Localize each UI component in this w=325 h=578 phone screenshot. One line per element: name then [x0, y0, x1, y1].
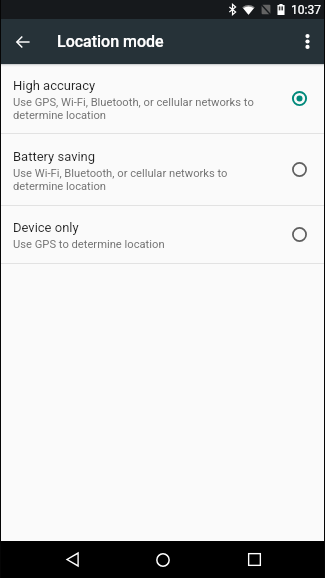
button[interactable]: High accuracy [1, 64, 324, 133]
button[interactable]: Navigate up [7, 26, 38, 57]
button[interactable]: More options [292, 26, 323, 57]
staticText: Battery saving [13, 149, 96, 164]
staticText: Use GPS, Wi-Fi, Bluetooth, or cellular n… [13, 96, 256, 122]
staticText: Device only [13, 220, 79, 235]
staticText: 10:37 [291, 3, 321, 17]
button[interactable]: Battery saving [1, 134, 324, 205]
staticText: Use Wi-Fi, Bluetooth, or cellular networ… [13, 167, 256, 193]
staticText: Location mode [57, 32, 164, 51]
button[interactable]: Back [44, 541, 100, 578]
button[interactable]: Device only [1, 206, 324, 263]
staticText: Use GPS to determine location [13, 238, 165, 251]
button[interactable]: Home [135, 541, 191, 578]
staticText: High accuracy [13, 78, 96, 93]
button[interactable]: Recent apps [226, 541, 282, 578]
